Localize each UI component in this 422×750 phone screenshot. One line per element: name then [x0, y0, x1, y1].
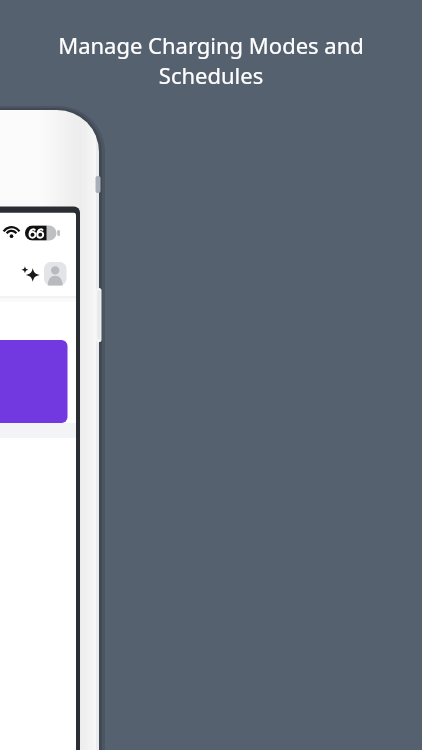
staticText: Manage Charging Modes and Schedules: [44, 30, 378, 91]
button[interactable]: Phone showing charging modes: [0, 0, 422, 750]
